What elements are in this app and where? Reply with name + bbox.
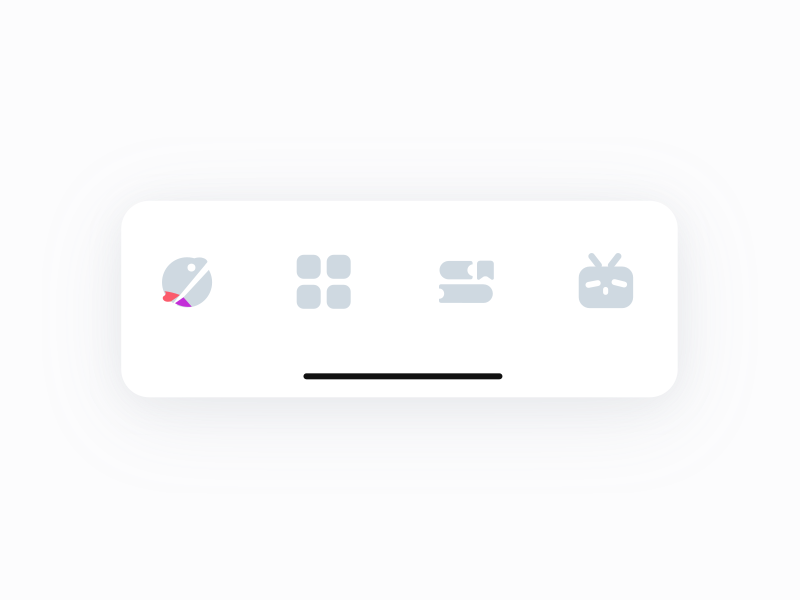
button[interactable]: Explore [121,251,260,313]
button[interactable]: Videos [539,251,678,313]
button[interactable]: Categories [260,251,399,313]
button[interactable]: Library [399,251,538,313]
